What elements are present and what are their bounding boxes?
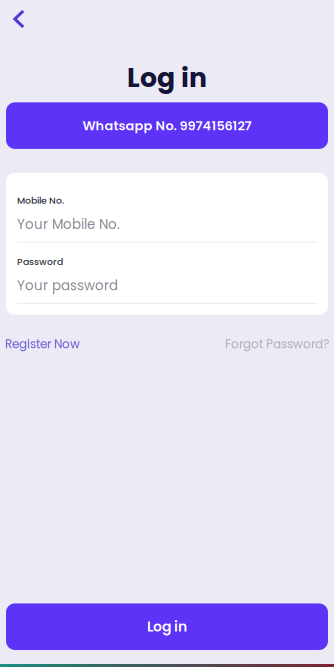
button[interactable]: Log in xyxy=(6,603,328,650)
button[interactable]: Whatsapp No. 9974156127 xyxy=(6,102,328,149)
button[interactable]: Back xyxy=(4,4,34,34)
staticText: Your Mobile No. xyxy=(17,215,120,234)
button[interactable]: Register Now xyxy=(5,336,80,352)
staticText: Log in xyxy=(147,617,187,636)
staticText: Your password xyxy=(17,276,118,295)
staticText: Password xyxy=(17,255,63,268)
staticText: Register Now xyxy=(5,336,80,352)
staticText: Whatsapp No. 9974156127 xyxy=(82,117,251,135)
staticText: Log in xyxy=(127,59,207,96)
staticText: Forgot Password? xyxy=(225,336,329,352)
staticText: Mobile No. xyxy=(17,194,64,207)
button[interactable]: Forgot Password? xyxy=(225,336,329,352)
